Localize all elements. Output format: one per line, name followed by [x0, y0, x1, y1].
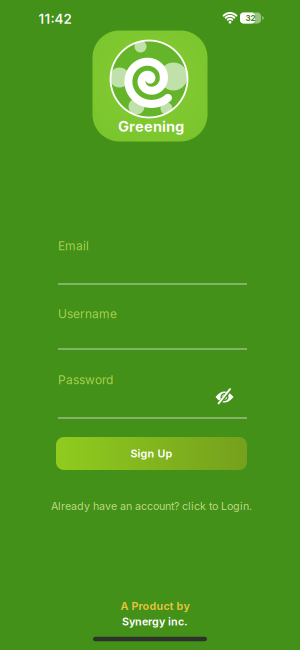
staticText: Username [58, 307, 117, 321]
staticText: Greening [118, 118, 184, 135]
button[interactable]: Already have an account? click to Login. [51, 500, 252, 512]
button[interactable]: Show password [211, 386, 239, 408]
staticText: Synergy inc. [122, 615, 188, 628]
staticText: 32 [245, 13, 255, 23]
staticText: Password [58, 373, 113, 387]
staticText: Already have an account? click to Login. [51, 500, 252, 512]
button[interactable]: Sign Up [56, 437, 247, 470]
staticText: 11:42 [38, 11, 71, 27]
staticText: Email [58, 239, 89, 253]
staticText: A Product by [120, 600, 189, 612]
staticText: Sign Up [130, 447, 172, 460]
